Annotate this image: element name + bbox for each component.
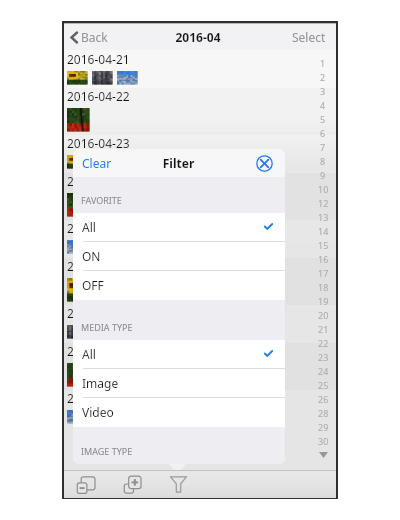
- staticText: 16: [318, 253, 329, 265]
- staticText: 2016-04-23: [67, 135, 130, 150]
- staticText: 3: [320, 85, 326, 97]
- button[interactable]: ON: [73, 242, 285, 271]
- staticText: 2016-04-25: [67, 220, 130, 235]
- staticText: 7: [320, 141, 326, 153]
- staticText: All: [82, 346, 96, 362]
- staticText: 9: [320, 169, 326, 181]
- staticText: 25: [318, 379, 329, 391]
- staticText: MEDIA TYPE: [81, 321, 133, 333]
- staticText: Filter: [111, 155, 246, 171]
- button[interactable]: Image: [73, 369, 285, 398]
- staticText: 12: [318, 197, 329, 209]
- button[interactable]: 2016-04-24: [64, 173, 336, 220]
- staticText: 2016-04-29: [67, 343, 130, 358]
- staticText: Image: [82, 375, 119, 391]
- staticText: 14: [318, 225, 329, 237]
- staticText: 2016-04-21: [67, 51, 130, 67]
- staticText: 6: [320, 127, 326, 139]
- staticText: ON: [82, 248, 101, 264]
- staticText: 21: [318, 323, 329, 335]
- staticText: 17: [318, 267, 329, 279]
- staticText: IMAGE TYPE: [81, 445, 133, 457]
- staticText: Video: [82, 404, 114, 420]
- staticText: 4: [320, 99, 326, 111]
- button[interactable]: Back: [64, 25, 114, 49]
- button[interactable]: 2016-04-21: [64, 50, 336, 88]
- button[interactable]: Select: [282, 25, 336, 49]
- button[interactable]: OFF: [73, 271, 285, 300]
- button[interactable]: Clear: [73, 150, 121, 176]
- staticText: 30: [318, 435, 329, 447]
- staticText: 2016-04-30: [67, 390, 130, 405]
- button[interactable]: 2016-04-29: [64, 343, 336, 390]
- button[interactable]: Deselect all: [74, 472, 99, 497]
- staticText: 29: [318, 421, 329, 433]
- staticText: All: [82, 219, 96, 235]
- button[interactable]: Video: [73, 398, 285, 427]
- staticText: 10: [318, 183, 329, 195]
- staticText: 2016-04-28: [67, 305, 130, 320]
- staticText: 1: [320, 57, 326, 69]
- button[interactable]: 2016-04-23: [64, 135, 336, 173]
- button[interactable]: 2016-04-26: [64, 258, 336, 305]
- staticText: 19: [318, 295, 329, 307]
- staticText: OFF: [82, 277, 104, 293]
- button[interactable]: All: [73, 213, 285, 242]
- button[interactable]: Filter: [166, 472, 191, 497]
- staticText: 13: [318, 211, 329, 223]
- button[interactable]: 2016-04-25: [64, 220, 336, 258]
- staticText: 23: [318, 351, 329, 363]
- staticText: 18: [318, 281, 329, 293]
- staticText: 2016-04-22: [67, 88, 130, 103]
- staticText: 2: [320, 71, 326, 83]
- button[interactable]: 2016-04-22: [64, 88, 336, 135]
- staticText: 2016-04: [114, 29, 282, 45]
- staticText: 20: [318, 309, 329, 321]
- button[interactable]: Select all: [120, 472, 145, 497]
- staticText: 22: [318, 337, 329, 349]
- staticText: 26: [318, 393, 329, 405]
- button[interactable]: Close: [256, 155, 273, 172]
- staticText: 24: [318, 365, 329, 377]
- staticText: 8: [320, 155, 326, 167]
- staticText: Back: [81, 29, 108, 45]
- staticText: 28: [318, 407, 329, 419]
- button[interactable]: 2016-04-30: [64, 390, 336, 428]
- staticText: 2016-04-24: [67, 173, 130, 188]
- staticText: 5: [320, 113, 326, 125]
- staticText: FAVORITE: [81, 194, 122, 206]
- button[interactable]: 2016-04-28: [64, 305, 336, 343]
- button[interactable]: All: [73, 340, 285, 369]
- staticText: 15: [318, 239, 329, 251]
- staticText: 2016-04-26: [67, 258, 130, 273]
